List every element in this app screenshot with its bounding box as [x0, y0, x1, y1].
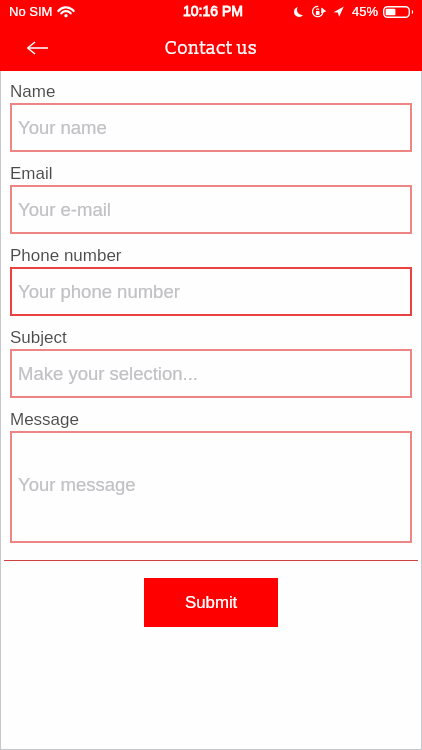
button[interactable]: Back	[15, 28, 59, 68]
staticText: Subject	[10, 328, 67, 347]
button[interactable]: Make your selection...	[10, 349, 412, 398]
staticText: Your e-mail	[18, 199, 111, 220]
staticText: Name	[10, 82, 56, 101]
staticText: No SIM	[9, 4, 53, 19]
staticText: Submit	[185, 593, 238, 612]
staticText: Make your selection...	[18, 363, 198, 384]
button[interactable]: Your message	[10, 431, 412, 543]
staticText: Contact us	[165, 37, 258, 59]
staticText: Message	[10, 410, 79, 429]
staticText: Your message	[18, 474, 136, 495]
button[interactable]: Submit	[144, 578, 278, 627]
button[interactable]: Your e-mail	[10, 185, 412, 234]
staticText: Your phone number	[18, 281, 180, 302]
staticText: Your name	[18, 117, 107, 138]
button[interactable]: Your phone number	[10, 267, 412, 316]
staticText: Email	[10, 164, 53, 183]
staticText: 45%	[352, 4, 379, 19]
button[interactable]: Your name	[10, 103, 412, 152]
staticText: Phone number	[10, 246, 122, 265]
staticText: 10:16 PM	[183, 3, 243, 19]
